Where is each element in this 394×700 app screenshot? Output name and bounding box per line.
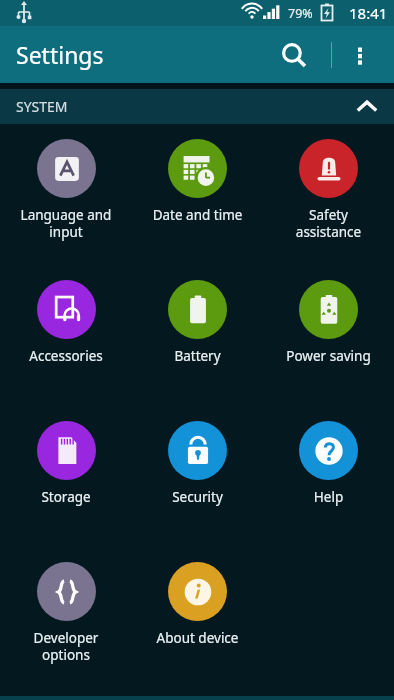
button[interactable]: About device — [132, 555, 263, 696]
staticText: Help — [265, 488, 392, 506]
button[interactable]: Search — [270, 31, 318, 79]
button[interactable]: Date and time — [132, 132, 263, 273]
staticText: Storage — [2, 488, 130, 506]
button[interactable]: SYSTEM — [0, 89, 394, 124]
staticText: 79% — [288, 5, 313, 22]
staticText: Safety assistance — [265, 206, 392, 241]
button[interactable]: More options — [338, 33, 382, 77]
staticText: SYSTEM — [16, 97, 68, 116]
staticText: Power saving — [265, 347, 392, 365]
button[interactable]: Security — [132, 414, 263, 555]
button[interactable]: Safety assistance — [263, 132, 394, 273]
button[interactable]: Storage — [0, 414, 132, 555]
staticText: Security — [134, 488, 261, 506]
button[interactable]: Accessories — [0, 273, 132, 414]
staticText: 18:41 — [349, 3, 388, 23]
staticText: Date and time — [134, 206, 261, 224]
button[interactable]: Battery — [132, 273, 263, 414]
button[interactable]: Power saving — [263, 273, 394, 414]
staticText: Battery — [134, 347, 261, 365]
staticText: Language and input — [2, 206, 130, 241]
button[interactable]: Developer options — [0, 555, 132, 696]
staticText: Settings — [16, 39, 104, 70]
staticText: Accessories — [2, 347, 130, 365]
button[interactable]: Language and input — [0, 132, 132, 273]
staticText: About device — [134, 629, 261, 647]
staticText: Developer options — [2, 629, 130, 664]
button[interactable]: Help — [263, 414, 394, 555]
